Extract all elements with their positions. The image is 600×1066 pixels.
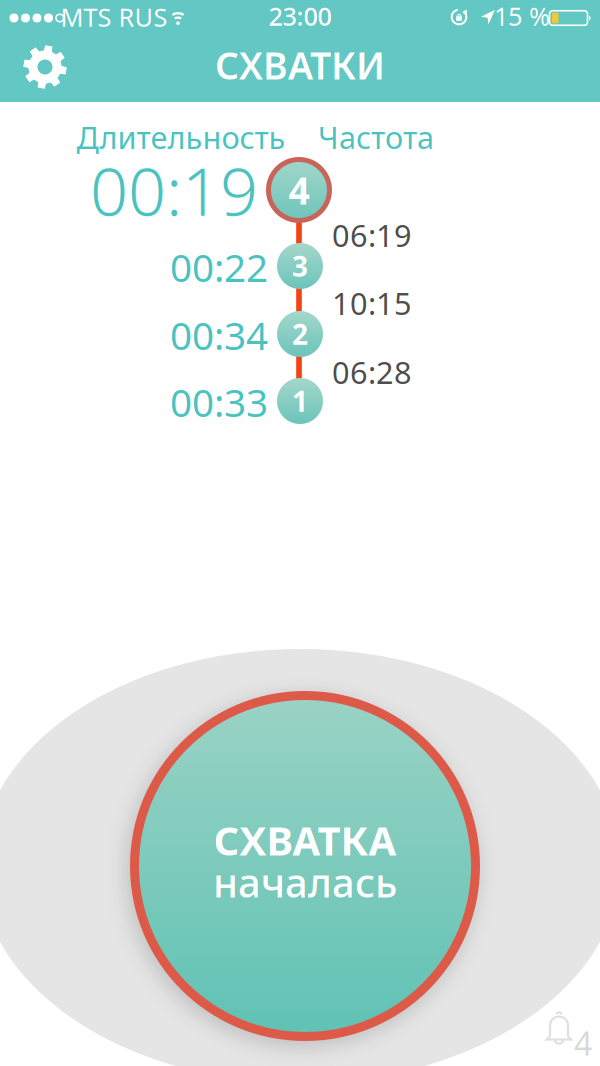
staticText: 4 — [574, 1022, 592, 1064]
staticText: 1 — [292, 382, 308, 420]
staticText: Частота — [318, 117, 434, 157]
staticText: 15 % — [494, 0, 550, 33]
staticText: 23:00 — [268, 0, 331, 33]
button[interactable]: Settings — [21, 43, 69, 91]
staticText: СХВАТКА — [213, 813, 396, 866]
staticText: 00:34 — [170, 309, 268, 361]
staticText: MTS RUS — [60, 0, 167, 34]
staticText: 4 — [288, 165, 309, 215]
staticText: 00:33 — [170, 376, 268, 428]
staticText: 3 — [292, 247, 308, 285]
staticText: началась — [213, 855, 397, 908]
button[interactable]: СХВАТКА — [130, 691, 480, 1041]
staticText: 00:22 — [170, 241, 268, 293]
staticText: Длительность — [76, 117, 285, 157]
staticText: 06:28 — [332, 352, 412, 392]
staticText: 00:19 — [90, 146, 258, 234]
staticText: 2 — [292, 315, 308, 353]
staticText: 10:15 — [332, 283, 412, 323]
button[interactable]: Notifications — [540, 1010, 596, 1056]
staticText: СХВАТКИ — [215, 40, 385, 90]
staticText: 06:19 — [332, 215, 412, 255]
